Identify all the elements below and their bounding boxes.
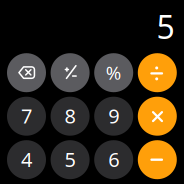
button[interactable]: Delete (7, 53, 46, 92)
staticText: % (106, 60, 122, 85)
button[interactable]: 7 (7, 97, 46, 136)
button[interactable]: Multiply (138, 97, 177, 136)
button[interactable]: 9 (94, 97, 133, 136)
button[interactable]: 8 (51, 97, 90, 136)
staticText: 8 (65, 102, 76, 129)
staticText: 4 (21, 146, 32, 172)
staticText: 7 (21, 102, 32, 129)
button[interactable]: 5 (51, 140, 90, 179)
button[interactable]: Divide (138, 53, 177, 92)
button[interactable]: Minus (138, 140, 177, 179)
staticText: 5 (65, 146, 76, 172)
button[interactable]: 4 (7, 140, 46, 179)
staticText: 9 (108, 102, 119, 129)
button[interactable]: 6 (94, 140, 133, 179)
staticText: 6 (108, 146, 119, 172)
staticText: 5 (156, 5, 174, 48)
button[interactable]: % (94, 53, 133, 92)
button[interactable]: Plus minus (51, 53, 90, 92)
